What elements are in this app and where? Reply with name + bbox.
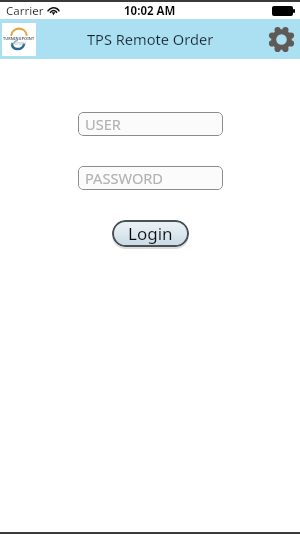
button[interactable]: Settings [265,23,297,55]
button[interactable]: PASSWORD [78,166,223,190]
button[interactable]: Login [112,220,189,247]
staticText: 10:02 AM [124,3,176,19]
staticText: USER [85,114,121,134]
staticText: PASSWORD [85,168,164,188]
button[interactable]: Turning Point Systems logo [2,23,36,56]
staticText: Login [128,222,173,245]
button[interactable]: USER [78,112,223,136]
staticText: Carrier [6,3,44,19]
staticText: TPS Remote Order [87,29,214,49]
staticText: TURNINGPOINT [3,36,35,41]
staticText: S Y S T E M S [11,42,27,46]
